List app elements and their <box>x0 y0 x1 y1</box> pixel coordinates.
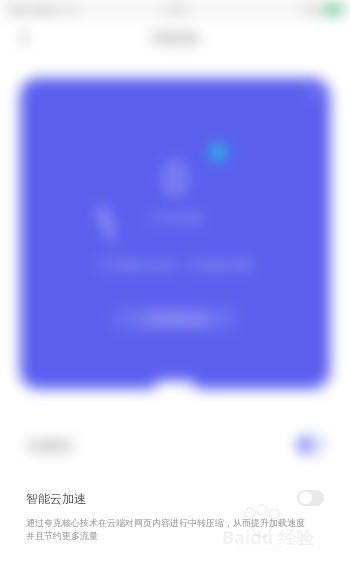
staticText: 智能云加速 <box>26 491 86 506</box>
staticText: 86% <box>303 3 321 15</box>
staticText: 0 <box>162 146 189 208</box>
button[interactable]: 智能云加速 <box>0 484 350 512</box>
staticText: 立即体验加速 <box>142 312 208 326</box>
staticText: 开启智能云加速，节省更多流量 <box>98 258 252 272</box>
button[interactable]: 无痕模式 <box>0 425 350 465</box>
staticText: 智能加速 <box>151 30 199 45</box>
staticText: 通过夸克核心技术在云端对网页内容进行中转压缩，从而提升加载速度 并且节约更多流量 <box>26 517 305 541</box>
staticText: 无痕模式 <box>26 438 74 453</box>
staticText: 中国移动 4G <box>24 3 77 15</box>
button[interactable]: Close <box>303 82 323 102</box>
staticText: Baidu 经验 <box>222 525 314 550</box>
button[interactable]: Back <box>10 24 38 52</box>
button[interactable]: 立即体验加速 <box>112 306 238 331</box>
